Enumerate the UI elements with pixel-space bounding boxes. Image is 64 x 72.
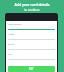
- button[interactable]: CVV: [8, 53, 55, 63]
- button[interactable]: Card number: [8, 23, 55, 33]
- button[interactable]: Expiry: [8, 43, 55, 53]
- staticText: Name: [8, 33, 15, 36]
- staticText: Add your card details: [0, 2, 64, 7]
- staticText: to continue: [0, 8, 64, 12]
- staticText: Expiry: [8, 43, 15, 46]
- button[interactable]: PAY: [8, 66, 55, 72]
- staticText: PAY: [29, 67, 34, 71]
- staticText: CVV: [8, 53, 13, 56]
- staticText: Card number: [8, 23, 22, 26]
- button[interactable]: Name: [8, 33, 55, 43]
